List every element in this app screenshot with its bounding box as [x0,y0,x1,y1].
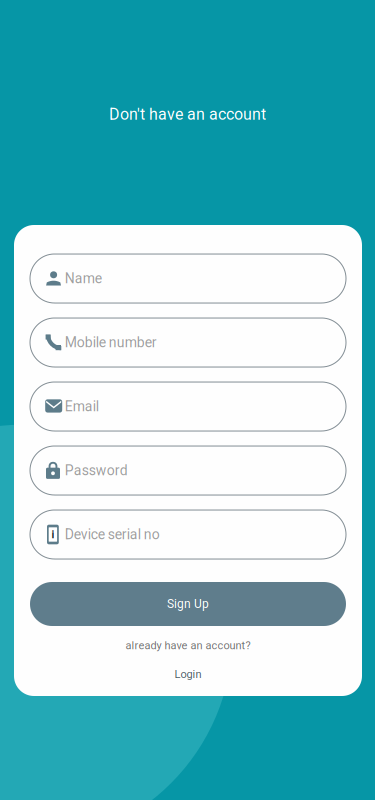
button[interactable]: Mobile number [30,318,346,367]
button[interactable]: i [30,510,346,559]
staticText: Mobile number [65,334,157,351]
staticText: Name [65,270,102,287]
button[interactable]: Name [30,254,346,303]
button[interactable]: Login [174,668,201,681]
staticText: Device serial no [65,526,160,543]
button[interactable]: Sign Up [30,582,346,626]
staticText: Sign Up [167,597,209,611]
staticText: Login [174,668,201,681]
staticText: already have an account? [125,639,250,652]
staticText: Password [65,462,128,479]
button[interactable]: Password [30,446,346,495]
staticText: Don't have an account [109,105,266,124]
staticText: i [51,528,54,541]
staticText: Email [65,398,99,415]
button[interactable]: Email [30,382,346,431]
